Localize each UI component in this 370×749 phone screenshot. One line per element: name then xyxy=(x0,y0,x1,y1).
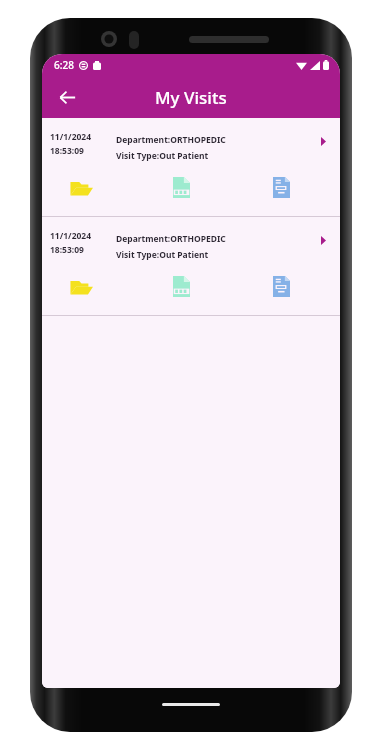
staticText: 11/1/2024 xyxy=(50,131,92,143)
button[interactable]: Open folder xyxy=(64,269,98,303)
button[interactable]: Open folder xyxy=(64,170,98,204)
button[interactable]: Open report xyxy=(264,269,298,303)
staticText: My Visits xyxy=(155,86,227,109)
button[interactable]: 11/1/2024 xyxy=(42,118,340,216)
button[interactable]: Open PDF xyxy=(164,170,198,204)
button[interactable]: Open report xyxy=(264,170,298,204)
button[interactable]: Back xyxy=(48,78,86,116)
staticText: 6:28 xyxy=(54,58,74,72)
staticText: 18:53:09 xyxy=(50,244,84,256)
staticText: Visit Type:Out Patient xyxy=(116,150,209,162)
staticText: Department:ORTHOPEDIC xyxy=(116,134,226,146)
staticText: 18:53:09 xyxy=(50,145,84,157)
staticText: 11/1/2024 xyxy=(50,230,92,242)
staticText: Visit Type:Out Patient xyxy=(116,249,209,261)
staticText: Department:ORTHOPEDIC xyxy=(116,233,226,245)
button[interactable]: 11/1/2024 xyxy=(42,217,340,315)
button[interactable]: Open PDF xyxy=(164,269,198,303)
